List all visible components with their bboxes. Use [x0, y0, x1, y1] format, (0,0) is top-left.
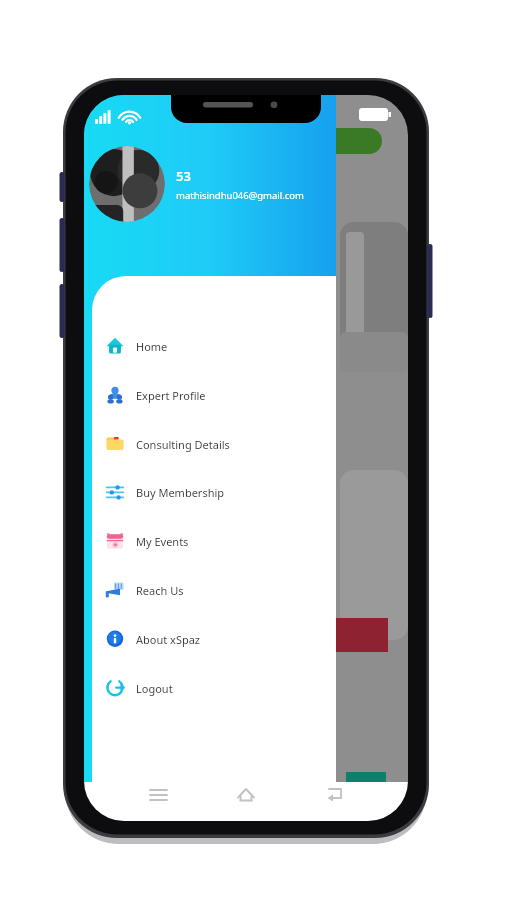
- staticText: Reach Us: [136, 583, 184, 598]
- staticText: Consulting Details: [136, 437, 230, 452]
- button[interactable]: Reach Us: [92, 570, 336, 610]
- staticText: mathisindhu046@gmail.com: [176, 189, 304, 202]
- staticText: Logout: [136, 681, 173, 696]
- staticText: 53: [176, 167, 191, 185]
- button[interactable]: About xSpaz: [92, 619, 336, 659]
- button[interactable]: Recent apps: [132, 777, 184, 813]
- button[interactable]: My Events: [92, 521, 336, 561]
- staticText: Home: [136, 339, 168, 354]
- button[interactable]: Home: [92, 326, 336, 366]
- button[interactable]: Home: [220, 777, 272, 813]
- button[interactable]: Consulting Details: [92, 424, 336, 464]
- button[interactable]: Buy Membership: [92, 472, 336, 512]
- staticText: Buy Membership: [136, 485, 225, 500]
- button[interactable]: Logout: [92, 668, 336, 708]
- button[interactable]: Expert Profile: [92, 375, 336, 415]
- staticText: About xSpaz: [136, 632, 201, 647]
- button[interactable]: Back: [309, 777, 361, 813]
- staticText: Expert Profile: [136, 388, 206, 403]
- staticText: My Events: [136, 534, 189, 549]
